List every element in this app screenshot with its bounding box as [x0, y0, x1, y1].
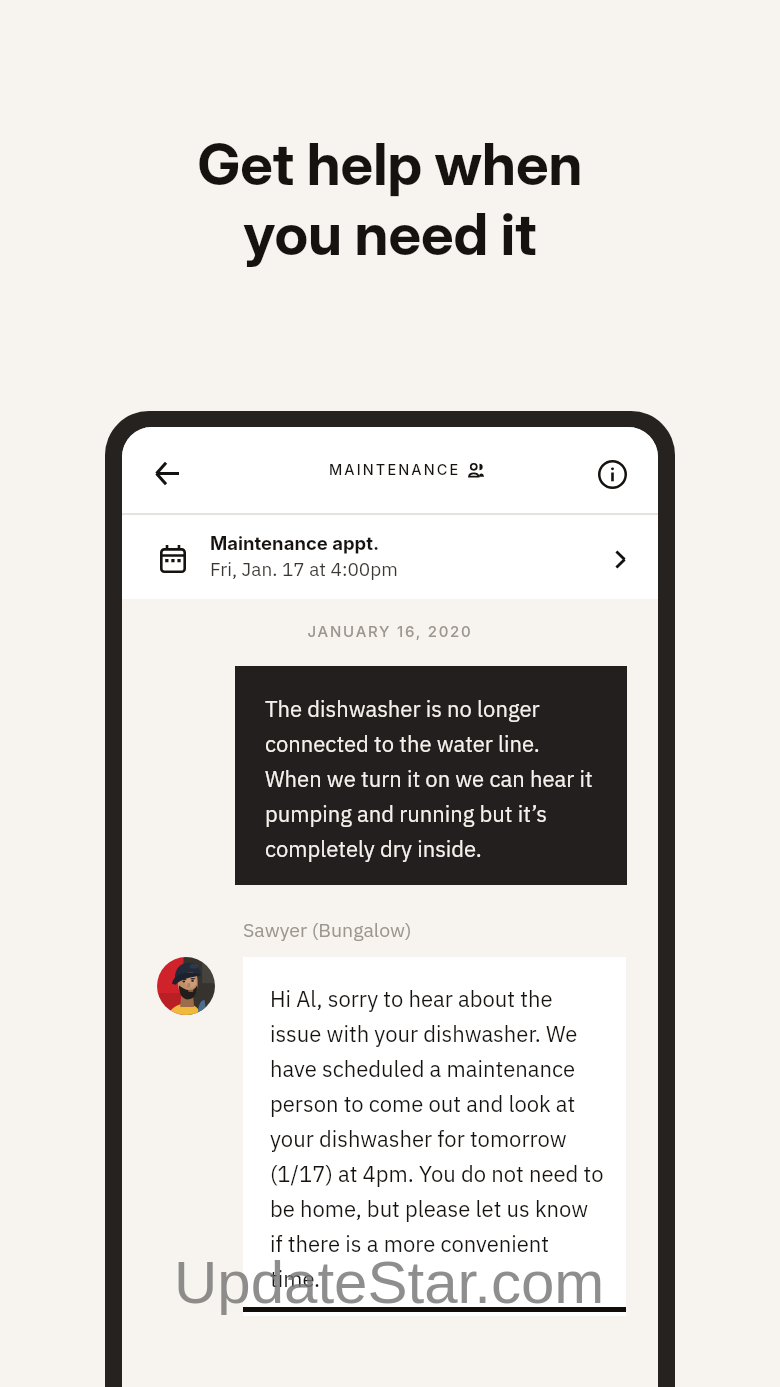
staticText: JANUARY 16, 2020 [122, 622, 658, 640]
button[interactable]: Hi Al, sorry to hear about the issue wit… [243, 957, 626, 1316]
button[interactable]: Maintenance appt. [122, 515, 658, 599]
staticText: Maintenance appt. [210, 532, 380, 554]
button[interactable]: The dishwasher is no longer connected to… [235, 666, 627, 885]
staticText: Fri, Jan. 17 at 4:00pm [210, 557, 398, 582]
button[interactable]: Sawyer profile photo [157, 957, 215, 1015]
button[interactable]: Back [144, 450, 190, 496]
staticText: Sawyer (Bungalow) [243, 917, 412, 942]
staticText: UpdateStar.com [174, 1249, 605, 1316]
staticText: Hi Al, sorry to hear about the issue wit… [270, 984, 604, 1293]
staticText: MAINTENANCE [329, 461, 461, 479]
staticText: Get help when you need it [0, 129, 780, 269]
staticText: The dishwasher is no longer connected to… [265, 694, 593, 863]
button[interactable]: Info [591, 453, 633, 495]
